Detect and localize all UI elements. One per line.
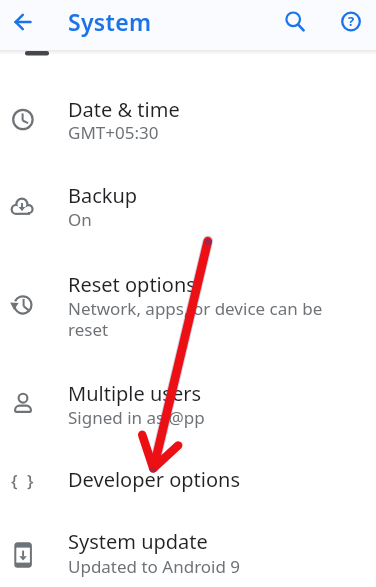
button[interactable] — [0, 452, 376, 507]
button[interactable] — [0, 518, 376, 587]
staticText: reset — [68, 318, 109, 341]
staticText: Reset options — [68, 271, 196, 298]
button[interactable] — [0, 85, 376, 161]
staticText: Signed in as @pp — [68, 406, 205, 429]
staticText: System — [68, 6, 152, 37]
button[interactable] — [0, 256, 376, 344]
button[interactable] — [274, 1, 314, 41]
staticText: Backup — [68, 182, 138, 209]
staticText: GMT+05:30 — [68, 121, 159, 144]
staticText: Date & time — [68, 96, 180, 123]
button[interactable] — [4, 3, 42, 41]
button[interactable] — [0, 368, 376, 440]
staticText: Developer options — [68, 466, 241, 493]
button[interactable] — [0, 171, 376, 244]
staticText: Multiple users — [68, 380, 202, 407]
staticText: Network, apps, or device can be — [68, 297, 323, 320]
staticText: System update — [68, 528, 208, 555]
staticText: ? — [348, 12, 355, 30]
staticText: { } — [11, 469, 36, 492]
staticText: Updated to Android 9 — [68, 555, 241, 578]
staticText: On — [68, 208, 92, 231]
button[interactable] — [330, 1, 372, 43]
